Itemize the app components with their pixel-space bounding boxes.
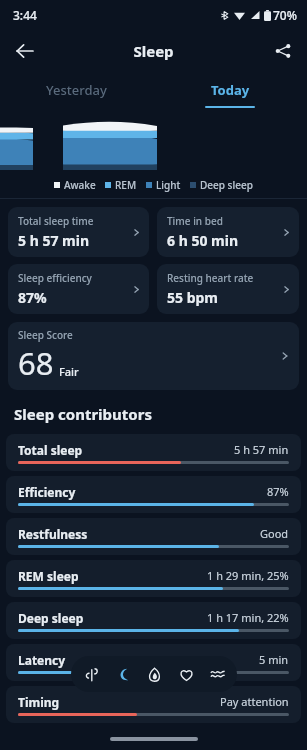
staticText: Good [260, 526, 289, 541]
staticText: Today [211, 81, 250, 99]
button[interactable]: Efficiency [6, 476, 301, 513]
button[interactable]: Sleep Score [8, 322, 299, 390]
staticText: 1 h 29 min, 25% [207, 568, 289, 583]
staticText: 1 h 17 min, 22% [207, 610, 289, 625]
button[interactable]: Timing [6, 686, 301, 723]
staticText: Total sleep [18, 442, 83, 458]
staticText: Resting heart rate [167, 271, 254, 285]
staticText: Deep sleep [200, 178, 253, 192]
staticText: Time in bed [167, 214, 223, 228]
staticText: 87% [267, 484, 289, 499]
staticText: REM sleep [18, 568, 79, 584]
button[interactable]: Back [6, 33, 42, 69]
button[interactable]: Home [79, 662, 103, 686]
button[interactable]: Sleep [110, 662, 134, 686]
button[interactable]: Share [265, 33, 301, 69]
button[interactable]: Latency [6, 644, 301, 681]
button[interactable]: Yesterday [0, 72, 153, 108]
staticText: 87% [18, 288, 47, 307]
staticText: REM [115, 178, 137, 192]
staticText: Total sleep time [18, 214, 94, 228]
button[interactable]: Resting heart rate [157, 264, 299, 314]
staticText: Latency [18, 652, 66, 668]
staticText: 55 bpm [167, 288, 219, 307]
staticText: Yesterday [46, 81, 107, 99]
button[interactable]: Today [153, 72, 307, 108]
staticText: 5 h 57 min [18, 231, 89, 250]
staticText: Fair [59, 364, 79, 379]
staticText: 3:44 [13, 7, 37, 23]
staticText: Pay attention [220, 694, 289, 709]
staticText: Sleep contributors [14, 404, 152, 424]
staticText: 70% [273, 7, 297, 23]
staticText: Sleep [133, 41, 174, 61]
button[interactable]: REM sleep [6, 560, 301, 597]
button[interactable]: Restfulness [6, 518, 301, 555]
staticText: Light [156, 178, 181, 192]
staticText: 68 [18, 342, 54, 384]
staticText: Timing [18, 694, 60, 710]
button[interactable]: Sleep efficiency [8, 264, 149, 314]
button[interactable]: Total sleep [6, 434, 301, 471]
staticText: 5 h 57 min [234, 442, 289, 457]
button[interactable]: Total sleep time [8, 207, 149, 257]
button[interactable]: Deep sleep [6, 602, 301, 639]
staticText: 5 min [259, 652, 289, 667]
button[interactable]: Time in bed [157, 207, 299, 257]
staticText: Restfulness [18, 526, 88, 542]
staticText: 6 h 50 min [167, 231, 238, 250]
staticText: Sleep Score [18, 328, 73, 342]
staticText: Efficiency [18, 484, 76, 500]
staticText: Awake [64, 178, 96, 192]
button[interactable]: Trends [205, 662, 229, 686]
button[interactable]: Activity [142, 662, 166, 686]
staticText: Sleep efficiency [18, 271, 92, 285]
staticText: Deep sleep [18, 610, 84, 626]
button[interactable]: Heart [174, 662, 198, 686]
